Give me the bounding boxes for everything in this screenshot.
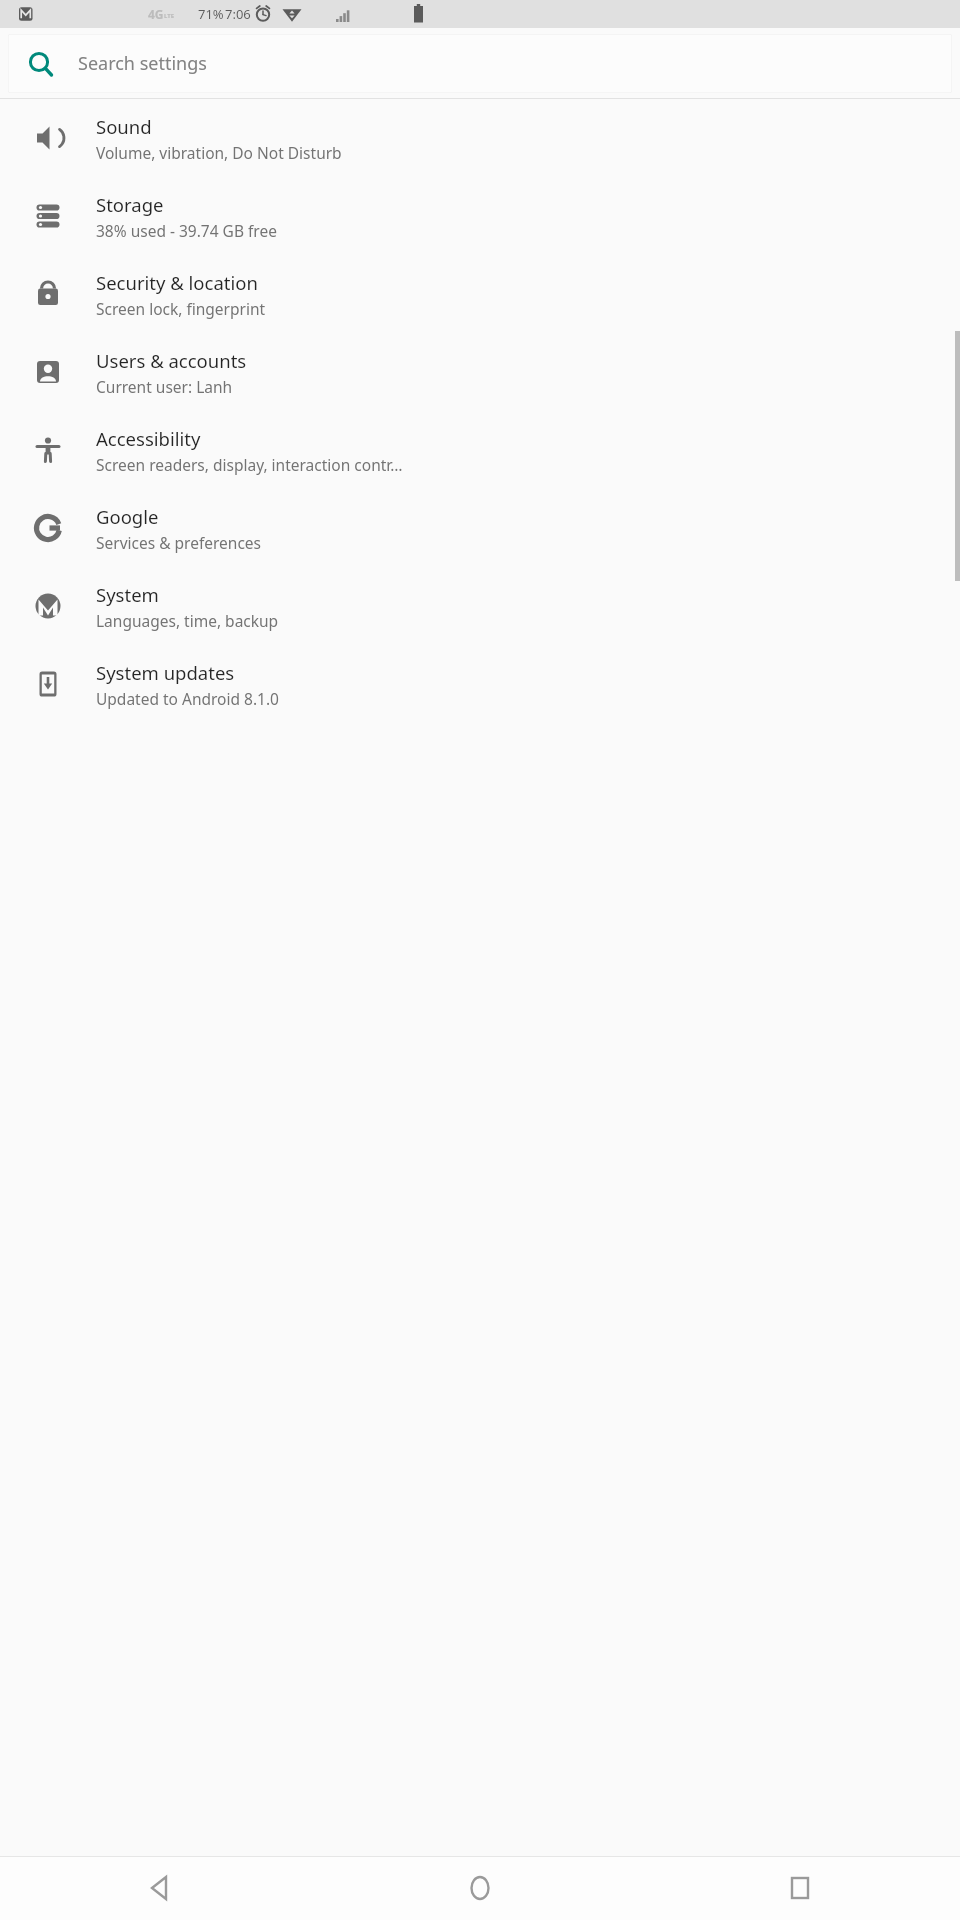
staticText: Screen lock, fingerprint: [96, 298, 266, 319]
staticText: Security & location: [96, 270, 258, 295]
staticText: 7:06: [225, 5, 251, 23]
staticText: Sound: [96, 114, 152, 139]
staticText: LTE: [164, 12, 175, 20]
button[interactable]: Google: [0, 489, 960, 567]
button[interactable]: Storage: [0, 177, 960, 255]
button[interactable]: Users & accounts: [0, 333, 960, 411]
button[interactable]: Recents: [640, 1856, 960, 1920]
button[interactable]: System updates: [0, 645, 960, 723]
button[interactable]: Search settings: [8, 34, 952, 93]
staticText: Services & preferences: [96, 532, 261, 553]
staticText: Google: [96, 504, 159, 529]
staticText: Search settings: [78, 51, 207, 76]
button[interactable]: Security & location: [0, 255, 960, 333]
staticText: Storage: [96, 192, 164, 217]
button[interactable]: System: [0, 567, 960, 645]
staticText: Current user: Lanh: [96, 376, 233, 397]
staticText: System: [96, 582, 159, 607]
staticText: 38% used - 39.74 GB free: [96, 220, 277, 241]
button[interactable]: Back: [0, 1856, 320, 1920]
staticText: Languages, time, backup: [96, 610, 279, 631]
staticText: System updates: [96, 660, 235, 685]
button[interactable]: Home: [320, 1856, 640, 1920]
staticText: Updated to Android 8.1.0: [96, 688, 279, 709]
button[interactable]: Sound: [0, 99, 960, 177]
staticText: Users & accounts: [96, 348, 247, 373]
staticText: 71%: [198, 5, 224, 23]
staticText: Volume, vibration, Do Not Disturb: [96, 142, 342, 163]
button[interactable]: Accessibility: [0, 411, 960, 489]
staticText: Accessibility: [96, 426, 201, 451]
staticText: 4G: [148, 6, 164, 22]
staticText: Screen readers, display, interaction con…: [96, 454, 403, 475]
